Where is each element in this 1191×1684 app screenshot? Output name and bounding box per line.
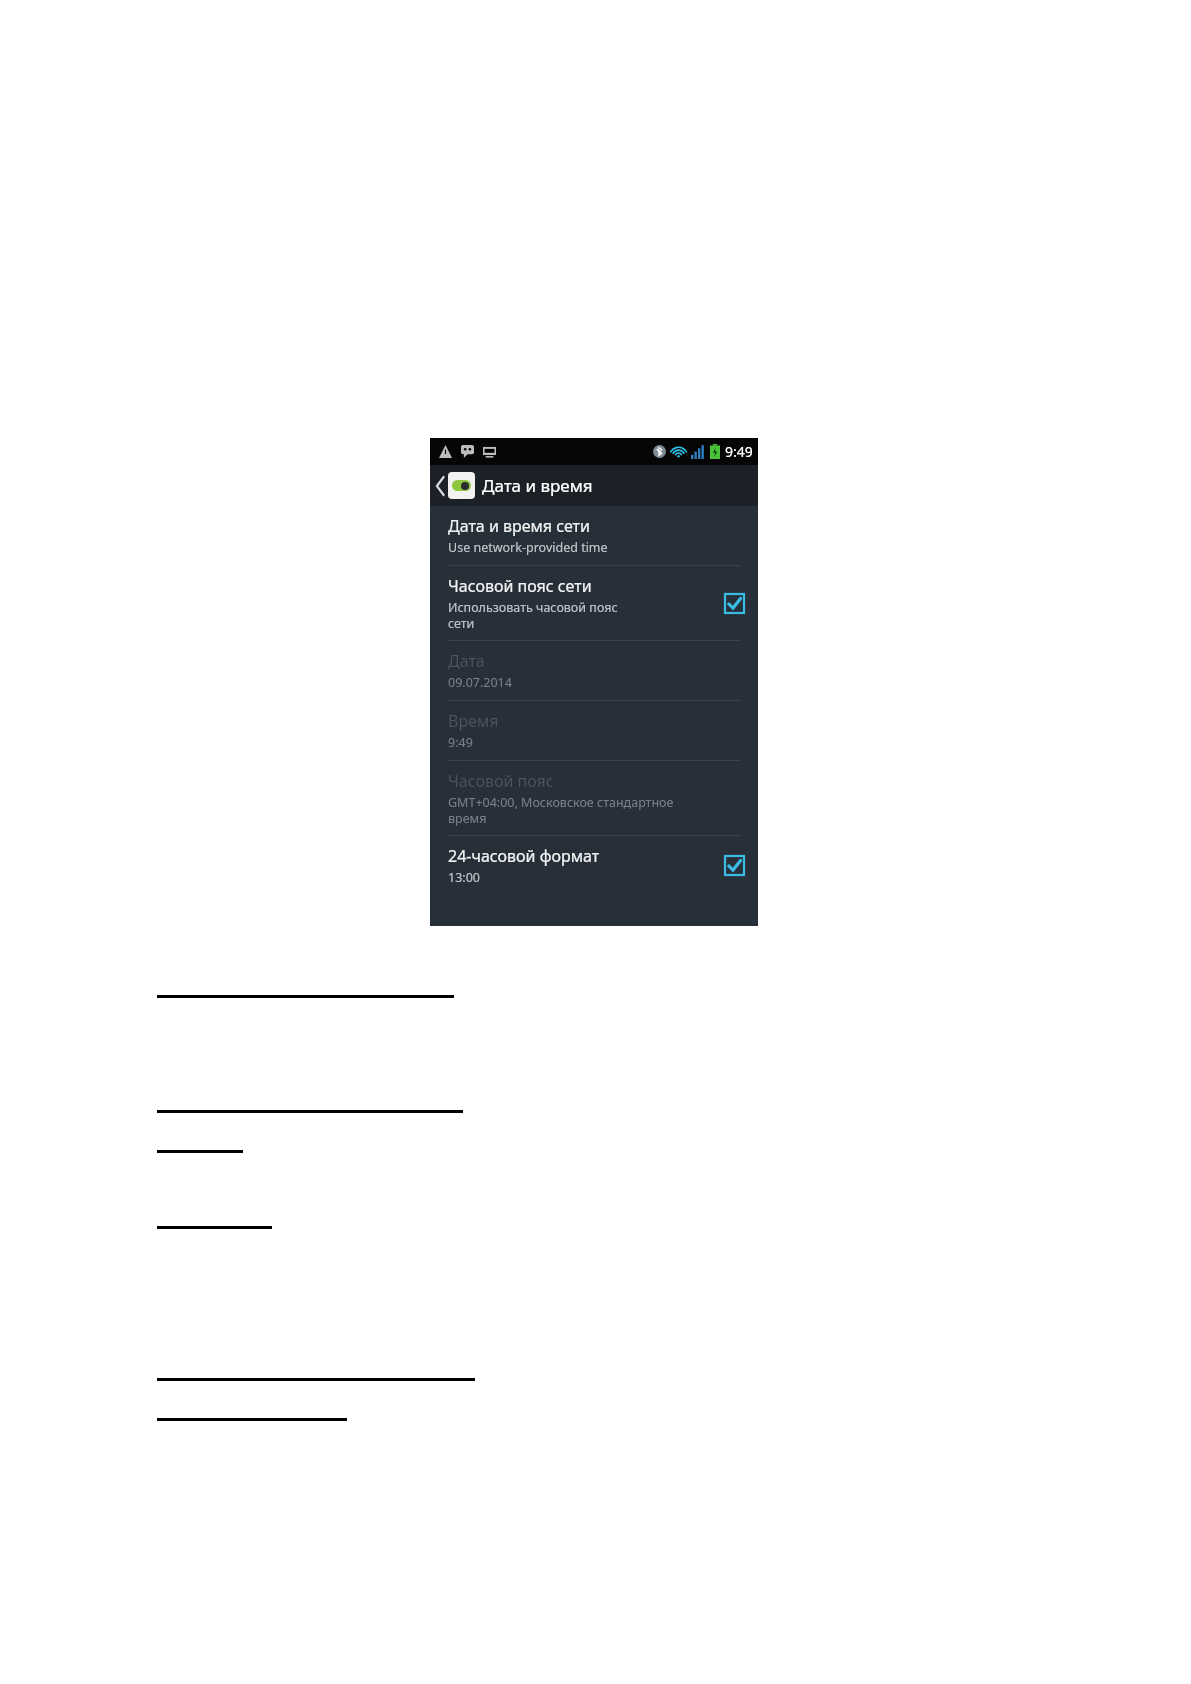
staticText: 9:49 bbox=[725, 442, 753, 461]
button[interactable]: Back bbox=[430, 465, 758, 506]
staticText: Время bbox=[448, 710, 499, 732]
button[interactable]: 24-часовой формат bbox=[430, 836, 758, 895]
button[interactable]: Время bbox=[430, 701, 758, 760]
staticText: 24-часовой формат bbox=[448, 845, 600, 867]
staticText: Использовать часовой пояс сети bbox=[448, 599, 618, 631]
staticText: Дата bbox=[448, 650, 485, 672]
button[interactable]: Дата bbox=[430, 641, 758, 700]
staticText: Use network-provided time bbox=[448, 539, 608, 556]
other: Back bbox=[436, 477, 445, 495]
button[interactable]: Часовой пояс сети bbox=[430, 566, 758, 640]
button[interactable]: Дата и время сети bbox=[430, 506, 758, 565]
staticText: Часовой пояс bbox=[448, 770, 554, 792]
staticText: Дата и время bbox=[482, 474, 593, 497]
staticText: Часовой пояс сети bbox=[448, 575, 592, 597]
staticText: Дата и время сети bbox=[448, 515, 591, 537]
button[interactable]: Часовой пояс bbox=[430, 761, 758, 835]
button[interactable]: Toggle bbox=[725, 594, 744, 613]
staticText: 13:00 bbox=[448, 869, 480, 886]
button[interactable]: Toggle bbox=[725, 856, 744, 875]
staticText: 09.07.2014 bbox=[448, 674, 512, 691]
staticText: GMT+04:00, Московское стандартное время bbox=[448, 794, 674, 826]
staticText: 9:49 bbox=[448, 734, 473, 751]
